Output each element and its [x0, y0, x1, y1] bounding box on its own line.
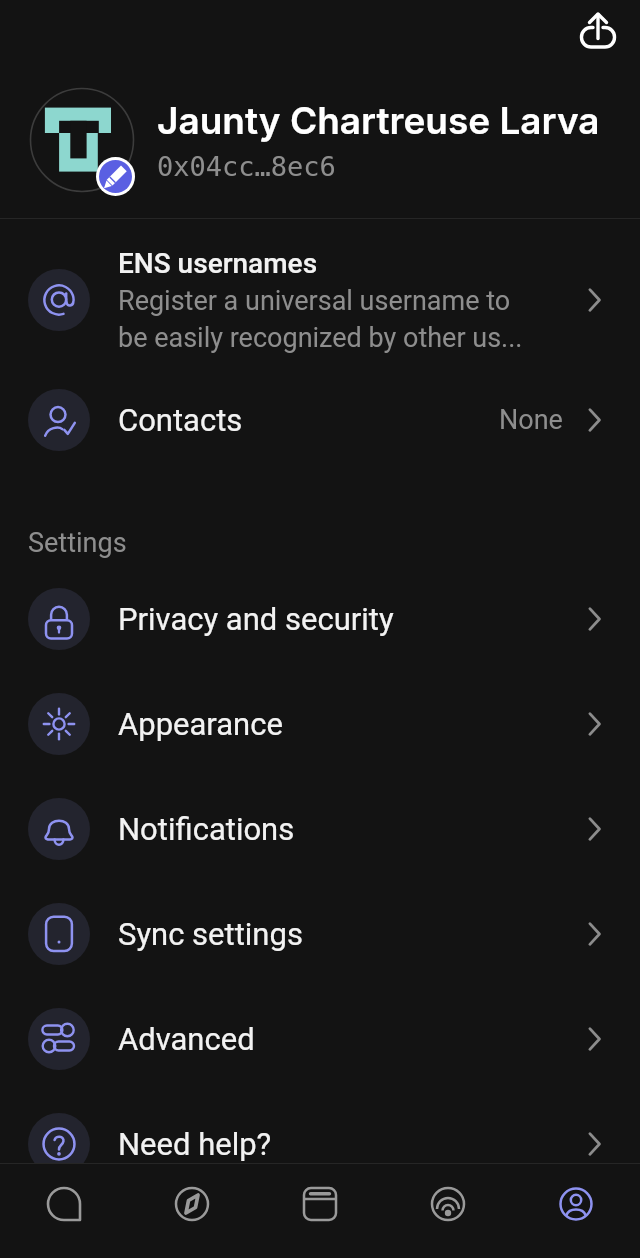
staticText: Advanced [118, 1021, 589, 1057]
button[interactable]: Contacts [0, 381, 640, 459]
staticText: Privacy and security [118, 601, 589, 637]
button[interactable]: Wallet [256, 1164, 384, 1258]
button[interactable]: Advanced [0, 986, 640, 1091]
button[interactable]: Need help? [0, 1091, 640, 1163]
staticText: Appearance [118, 706, 589, 742]
staticText: Settings [28, 527, 127, 559]
button[interactable]: ENS usernames [0, 219, 640, 381]
button[interactable]: Activity [384, 1164, 512, 1258]
button[interactable]: Share [573, 6, 623, 56]
button[interactable]: Jaunty Chartreuse Larva [0, 62, 640, 218]
staticText: 0x04cc…8ec6 [157, 151, 336, 182]
staticText: Sync settings [118, 916, 589, 952]
staticText: ENS usernames [118, 247, 318, 280]
button[interactable]: Privacy and security [0, 566, 640, 671]
button[interactable]: Notifications [0, 776, 640, 881]
staticText: Notifications [118, 811, 589, 847]
staticText: Jaunty Chartreuse Larva [157, 98, 600, 143]
button[interactable]: Sync settings [0, 881, 640, 986]
staticText: Contacts [118, 402, 499, 438]
staticText: Need help? [118, 1126, 589, 1162]
button[interactable]: Explore [128, 1164, 256, 1258]
staticText: Register a universal username to be easi… [118, 285, 523, 353]
button[interactable]: Appearance [0, 671, 640, 776]
button[interactable]: Profile [512, 1164, 640, 1258]
staticText: None [499, 404, 563, 436]
button[interactable]: Home [0, 1164, 128, 1258]
